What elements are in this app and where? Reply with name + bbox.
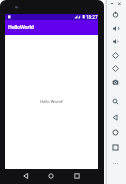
staticText: Hello World! [40,99,64,104]
button[interactable] [108,76,122,88]
button[interactable] [108,22,122,34]
button[interactable] [108,95,122,107]
button[interactable] [108,62,122,74]
button[interactable] [116,0,123,8]
staticText: HelloWorld [8,24,34,31]
button[interactable] [70,171,84,180]
button[interactable] [108,157,122,169]
button[interactable] [44,171,58,180]
button[interactable] [108,111,122,123]
button[interactable] [108,141,122,153]
button[interactable] [108,126,122,138]
button[interactable] [108,49,122,61]
button[interactable] [108,8,122,20]
staticText: 18:27 [86,14,98,20]
button[interactable] [108,35,122,47]
button[interactable] [19,171,33,180]
button[interactable] [108,0,115,8]
